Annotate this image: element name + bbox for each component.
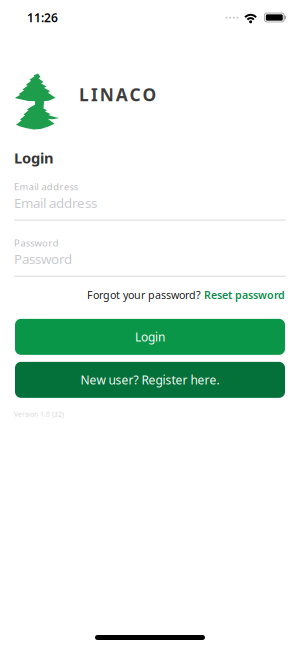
staticText: Reset password: [204, 288, 285, 302]
staticText: A: [116, 83, 128, 106]
button[interactable]: Login: [15, 319, 285, 355]
staticText: I: [91, 83, 98, 106]
staticText: Forgot your password?: [87, 288, 204, 302]
staticText: New user? Register here.: [80, 372, 219, 388]
button[interactable]: Password: [14, 249, 285, 277]
staticText: Login: [135, 329, 165, 345]
staticText: O: [142, 83, 156, 106]
staticText: Password: [14, 250, 72, 268]
button[interactable]: New user? Register here.: [15, 362, 285, 398]
staticText: Email address: [14, 194, 97, 212]
staticText: Email address: [14, 180, 78, 193]
staticText: 11:26: [27, 9, 58, 25]
staticText: N: [100, 83, 114, 106]
staticText: Password: [14, 237, 59, 249]
button[interactable]: Email address: [14, 193, 285, 221]
button[interactable]: Reset password: [204, 288, 285, 302]
staticText: Login: [14, 148, 54, 167]
staticText: C: [130, 83, 141, 106]
staticText: Version 1.0 (32): [14, 410, 64, 419]
staticText: L: [79, 83, 89, 106]
